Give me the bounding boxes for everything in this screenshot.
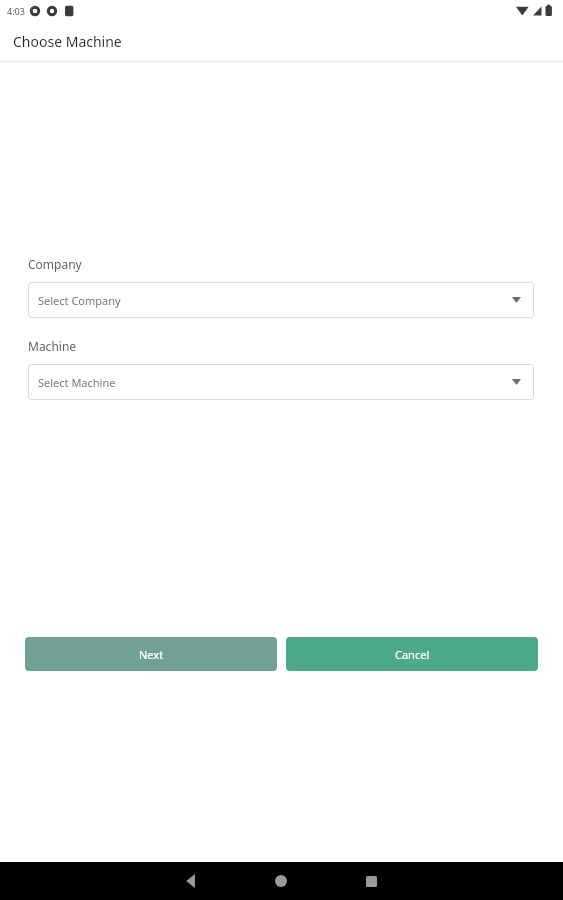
button[interactable]: Select Company	[28, 282, 534, 318]
staticText: 4:03	[7, 5, 25, 17]
staticText: Company	[28, 256, 82, 272]
staticText: Next	[139, 647, 164, 662]
staticText: Cancel	[395, 647, 430, 662]
button[interactable]: Next	[25, 637, 277, 671]
button[interactable]: Cancel	[286, 637, 538, 671]
button[interactable]: Recent apps	[352, 862, 390, 900]
button[interactable]: Home	[262, 862, 300, 900]
staticText: Choose Machine	[13, 32, 122, 51]
button[interactable]: Back	[172, 862, 210, 900]
staticText: Select Machine	[38, 375, 116, 390]
staticText: Machine	[28, 338, 77, 354]
staticText: Select Company	[38, 293, 121, 308]
button[interactable]: Select Machine	[28, 364, 534, 400]
